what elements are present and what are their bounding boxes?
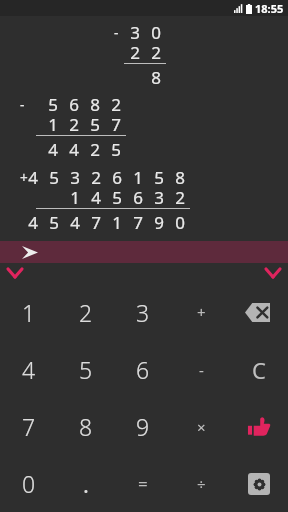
button[interactable]: + [172,283,230,341]
button[interactable]: 0 [0,455,57,512]
button[interactable]: Previous [3,264,27,282]
staticText: - [114,23,119,42]
staticText: 3 [70,166,80,189]
button[interactable]: = [114,455,172,512]
staticText: 7 [133,211,143,234]
staticText: 5 [49,211,59,234]
button[interactable]: . [57,455,114,512]
staticText: 6 [112,166,122,189]
button[interactable]: Next [261,264,285,282]
staticText: 6 [133,186,143,209]
staticText: × [197,417,206,437]
staticText: 1 [48,113,58,136]
staticText: 4 [28,166,38,189]
staticText: 5 [112,186,122,209]
staticText: 5 [154,166,164,189]
staticText: 2 [111,93,121,116]
button[interactable]: 3 [114,283,172,341]
staticText: 2 [91,166,101,189]
staticText: 4 [28,211,38,234]
staticText: 1 [22,297,36,328]
button[interactable]: 6 [114,341,172,398]
button[interactable]: 7 [0,398,57,455]
staticText: 0 [175,211,185,234]
button[interactable]: Confirm [230,398,288,455]
button[interactable]: 2 [57,283,114,341]
staticText: 1 [112,211,122,234]
button[interactable]: 1 [0,283,57,341]
staticText: ÷ [197,474,206,494]
staticText: C [252,355,266,385]
staticText: 5 [79,354,93,385]
staticText: 6 [69,93,79,116]
staticText: 8 [175,166,185,189]
button[interactable]: 8 [57,398,114,455]
staticText: 1 [70,186,80,209]
staticText: 5 [111,138,121,161]
staticText: 8 [90,93,100,116]
staticText: 5 [49,166,59,189]
staticText: 3 [154,186,164,209]
button[interactable]: Backspace [230,283,288,341]
staticText: 8 [151,66,161,89]
staticText: 2 [69,113,79,136]
button[interactable]: - [172,341,230,398]
staticText: 0 [22,468,36,499]
staticText: 4 [22,354,36,385]
staticText: 4 [70,211,80,234]
staticText: 3 [130,21,140,44]
staticText: 7 [22,411,36,442]
staticText: 18:55 [255,1,284,16]
staticText: 2 [130,41,140,64]
button[interactable]: 4 [0,341,57,398]
staticText: . [83,469,89,499]
staticText: 2 [90,138,100,161]
staticText: 6 [136,354,150,385]
staticText: 2 [151,41,161,64]
staticText: 4 [91,186,101,209]
button[interactable]: C [230,341,288,398]
staticText: 5 [90,113,100,136]
button[interactable]: 5 [57,341,114,398]
staticText: + [197,302,206,322]
staticText: - [199,360,204,380]
button[interactable]: 9 [114,398,172,455]
staticText: 0 [151,21,161,44]
button[interactable]: × [172,398,230,455]
staticText: 1 [133,166,143,189]
staticText: 5 [48,93,58,116]
button[interactable]: Settings [230,455,288,512]
staticText: 2 [175,186,185,209]
staticText: 4 [48,138,58,161]
staticText: 7 [91,211,101,234]
staticText: 4 [69,138,79,161]
staticText: 3 [136,297,150,328]
button[interactable]: ÷ [172,455,230,512]
staticText: 7 [111,113,121,136]
staticText: = [138,472,148,495]
staticText: - [20,95,25,114]
button[interactable] [0,241,288,263]
staticText: 8 [79,411,93,442]
staticText: + [20,168,28,187]
staticText: 2 [79,297,93,328]
staticText: 9 [154,211,164,234]
staticText: 9 [136,411,150,442]
